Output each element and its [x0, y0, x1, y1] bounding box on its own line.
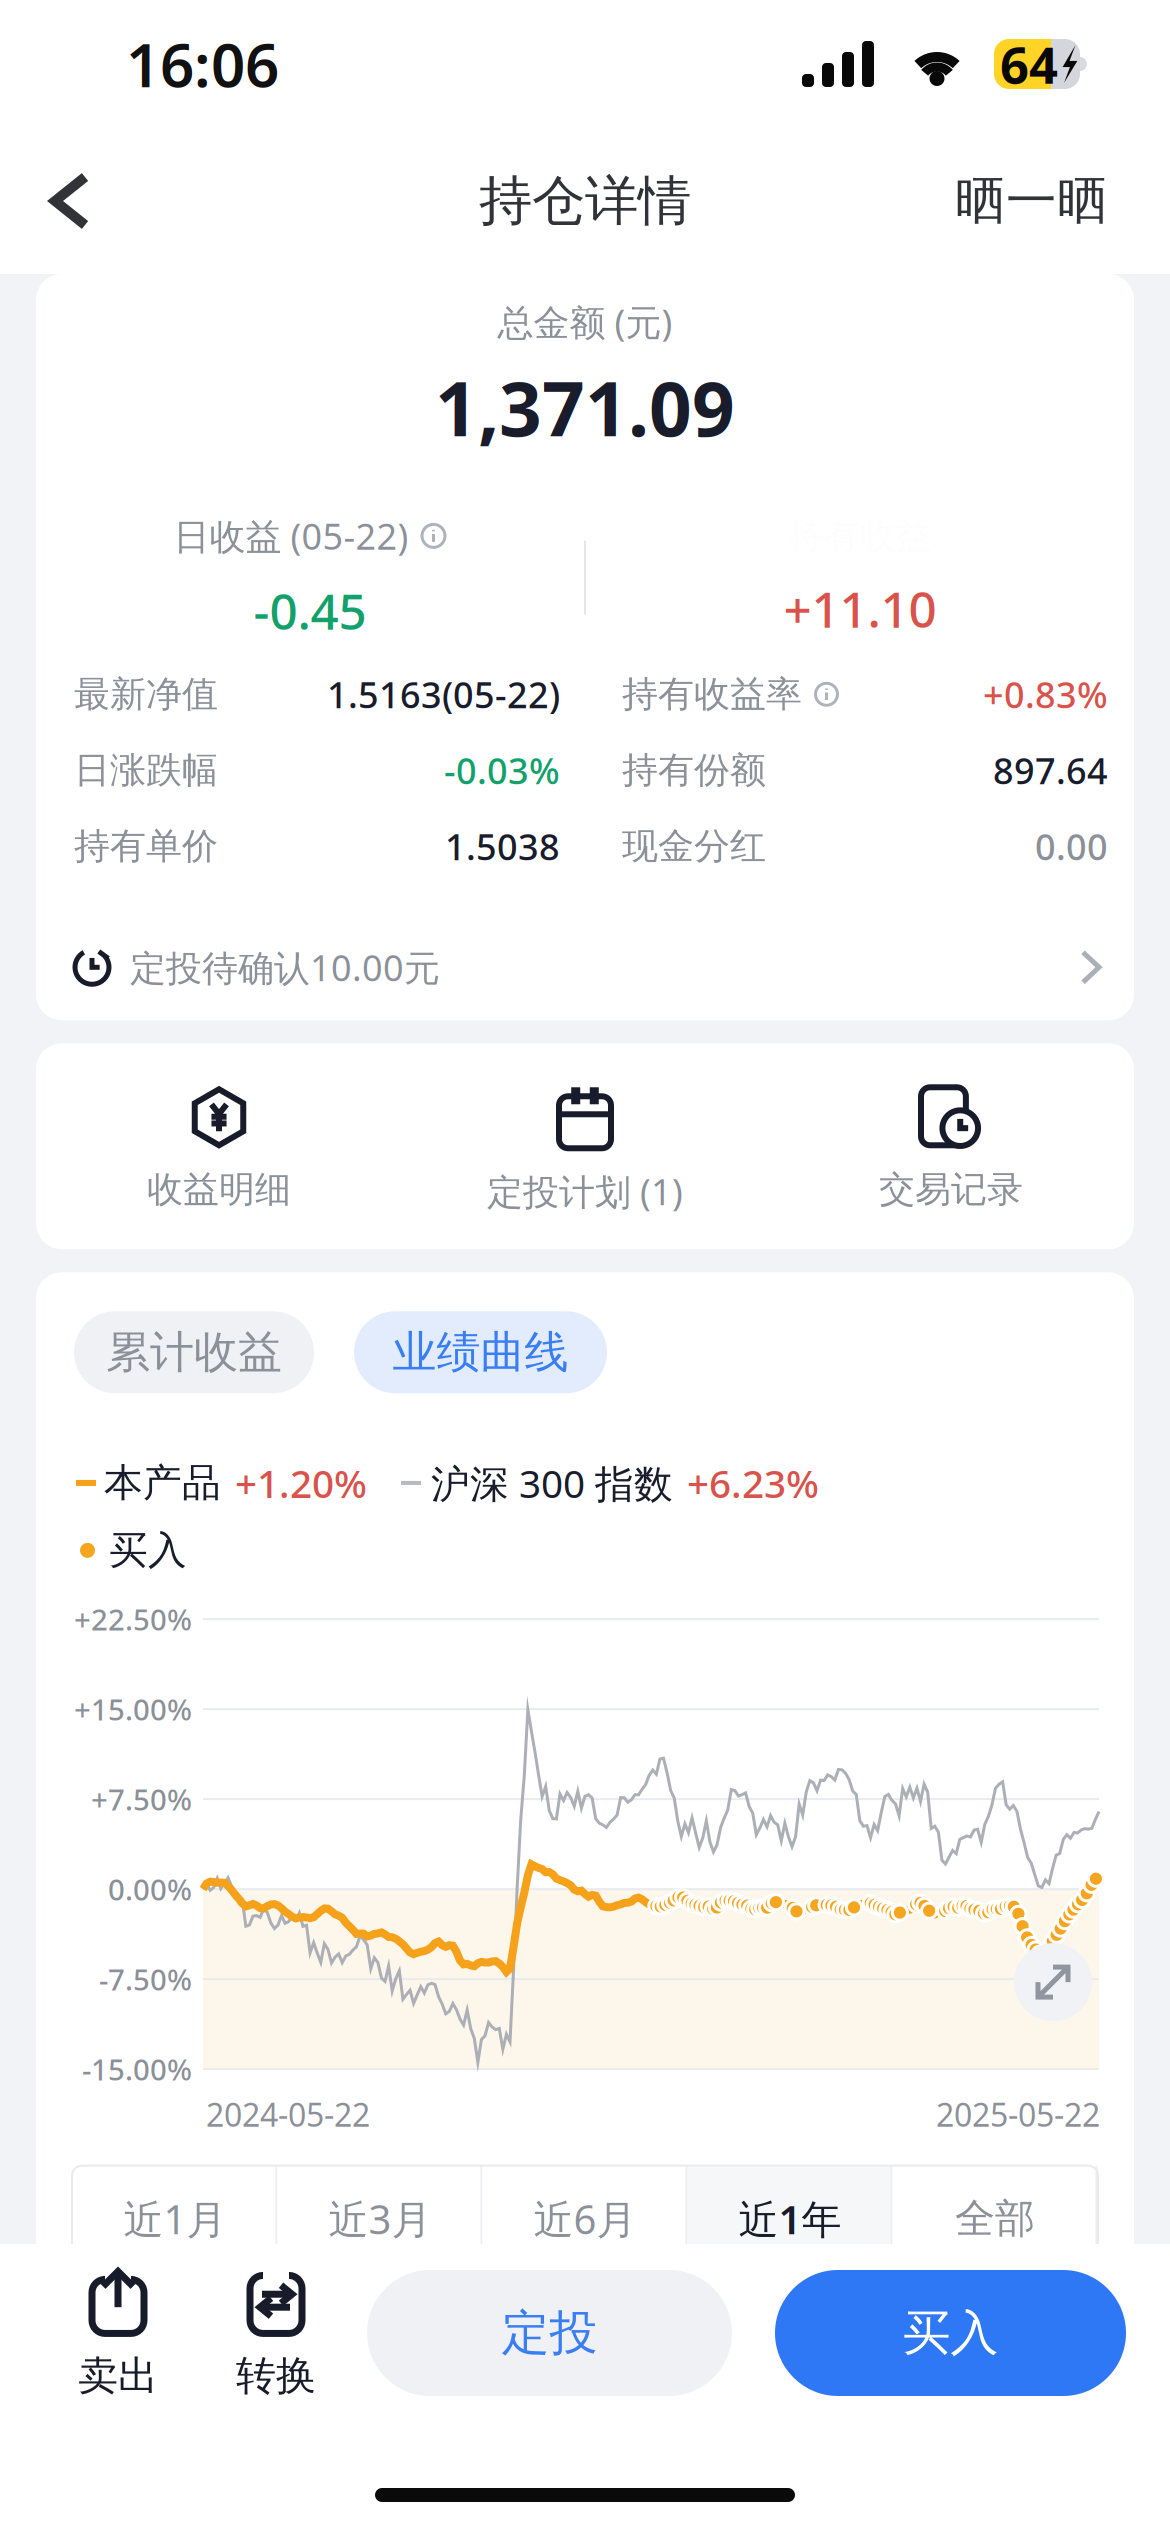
button[interactable]: 近3月: [277, 2166, 482, 2272]
staticText: 64: [1000, 30, 1058, 98]
staticText: 近6月: [533, 2192, 636, 2245]
staticText: 0.00%: [108, 1870, 192, 1909]
staticText: 0.00: [1035, 822, 1108, 870]
staticText: +7.50%: [91, 1780, 192, 1819]
staticText: 全部: [955, 2194, 1035, 2243]
staticText: -15.00%: [82, 2050, 192, 2089]
button[interactable]: 收益明细: [36, 1043, 402, 1249]
button[interactable]: 近1月: [72, 2166, 277, 2272]
staticText: 转换: [236, 2351, 316, 2400]
staticText: 1,371.09: [435, 358, 735, 457]
staticText: +15.00%: [74, 1690, 192, 1729]
staticText: 近3月: [328, 2192, 431, 2245]
button[interactable]: 定投待确认10.00元: [36, 922, 1134, 1012]
staticText: 1.5163(05-22): [327, 670, 560, 718]
button[interactable]: 买入: [775, 2270, 1126, 2396]
staticText: 持仓详情: [479, 168, 691, 234]
staticText: -0.45: [253, 578, 366, 643]
staticText: 最新净值: [74, 672, 218, 716]
button[interactable]: 定投: [367, 2270, 732, 2396]
staticText: 买入: [902, 2303, 998, 2362]
staticText: 日收益 (05-22): [173, 512, 408, 560]
staticText: 持有单价: [74, 824, 218, 868]
staticText: 日涨跌幅: [74, 748, 218, 792]
staticText: 业绩曲线: [392, 1325, 568, 1379]
staticText: +0.83%: [983, 670, 1108, 718]
staticText: 卖出: [78, 2351, 158, 2400]
button[interactable]: 定投计划 (1): [402, 1043, 768, 1249]
staticText: 交易记录: [879, 1167, 1023, 1211]
button[interactable]: 交易记录: [768, 1043, 1134, 1249]
staticText: 总金额 (元): [497, 298, 672, 346]
button[interactable]: 全部: [892, 2166, 1097, 2272]
staticText: 897.64: [993, 746, 1108, 794]
button[interactable]: 转换: [211, 2271, 341, 2395]
staticText: 收益明细: [147, 1167, 291, 1211]
staticText: +11.10: [783, 576, 936, 641]
button[interactable]: 返回: [22, 151, 118, 251]
staticText: 1.5038: [445, 822, 560, 870]
staticText: -7.50%: [99, 1960, 192, 1999]
button[interactable]: 近6月: [482, 2166, 687, 2272]
staticText: 近1年: [738, 2192, 841, 2245]
button[interactable]: 晒一晒: [941, 151, 1122, 251]
button[interactable]: 业绩曲线: [354, 1311, 607, 1393]
button[interactable]: 卖出: [53, 2271, 183, 2395]
staticText: +22.50%: [74, 1600, 192, 1639]
staticText: 持有份额: [622, 748, 766, 792]
staticText: 买入: [109, 1527, 187, 1574]
staticText: 累计收益: [106, 1325, 282, 1379]
staticText: 本产品: [104, 1459, 221, 1507]
button[interactable]: 放大图表: [1014, 1943, 1092, 2021]
staticText: 近1月: [123, 2192, 226, 2245]
staticText: 定投: [501, 2303, 597, 2362]
staticText: +6.23%: [687, 1457, 819, 1509]
staticText: 定投计划 (1): [487, 1167, 683, 1215]
staticText: 2025-05-22: [936, 2093, 1100, 2136]
button[interactable]: 近1年: [687, 2166, 892, 2272]
staticText: 晒一晒: [955, 170, 1108, 232]
staticText: 沪深 300 指数: [431, 1457, 673, 1509]
staticText: -0.03%: [444, 746, 560, 794]
staticText: 现金分红: [622, 824, 766, 868]
staticText: +1.20%: [235, 1457, 367, 1509]
staticText: 定投待确认10.00元: [130, 943, 440, 991]
button[interactable]: 累计收益: [74, 1311, 314, 1393]
staticText: 持有收益率: [622, 672, 802, 716]
staticText: 16:06: [126, 24, 279, 104]
staticText: 2024-05-22: [206, 2093, 370, 2136]
